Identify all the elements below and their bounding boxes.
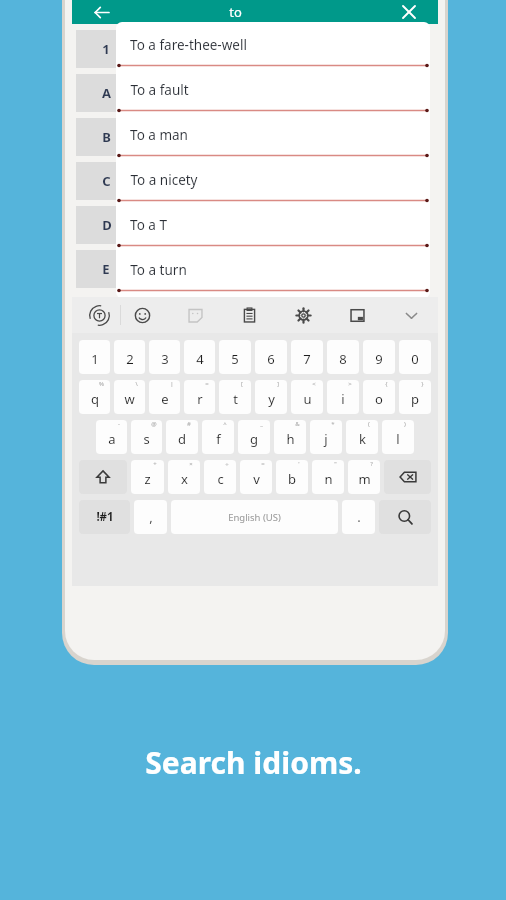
button[interactable]: q: [79, 380, 110, 414]
button[interactable]: v: [240, 460, 272, 494]
button[interactable]: Backspace: [384, 460, 431, 494]
button[interactable]: Emoji: [129, 302, 155, 328]
button[interactable]: Translate: [86, 302, 112, 328]
button[interactable]: Clear: [398, 1, 420, 23]
button[interactable]: Stickers: [182, 302, 208, 328]
staticText: r: [197, 390, 203, 408]
button[interactable]: Clipboard: [236, 302, 262, 328]
staticText: t: [233, 390, 238, 408]
button[interactable]: m: [348, 460, 380, 494]
staticText: +: [153, 460, 157, 468]
button[interactable]: .: [342, 500, 375, 534]
staticText: z: [144, 470, 151, 488]
staticText: x: [181, 470, 188, 488]
button[interactable]: 8: [327, 340, 359, 374]
button[interactable]: To a turn: [116, 247, 430, 292]
staticText: 2: [126, 350, 134, 368]
staticText: B: [102, 128, 111, 146]
staticText: To a nicety: [130, 171, 198, 189]
button[interactable]: English (US): [171, 500, 338, 534]
button[interactable]: Floating keyboard: [344, 302, 370, 328]
staticText: To a man: [130, 126, 188, 144]
button[interactable]: n: [312, 460, 344, 494]
button[interactable]: 5: [219, 340, 251, 374]
button[interactable]: E: [76, 250, 424, 288]
button[interactable]: a: [96, 420, 127, 454]
button[interactable]: l: [382, 420, 414, 454]
staticText: e: [161, 390, 169, 408]
button[interactable]: 2: [114, 340, 145, 374]
button[interactable]: u: [291, 380, 323, 414]
staticText: f: [216, 430, 221, 448]
staticText: d: [178, 430, 186, 448]
button[interactable]: A: [76, 74, 424, 112]
button[interactable]: r: [184, 380, 215, 414]
button[interactable]: To a man: [116, 112, 430, 157]
button[interactable]: p: [399, 380, 431, 414]
button[interactable]: z: [131, 460, 164, 494]
button[interactable]: B: [76, 118, 424, 156]
button[interactable]: 3: [149, 340, 180, 374]
staticText: q: [91, 390, 99, 408]
button[interactable]: To a T: [116, 202, 430, 247]
button[interactable]: 7: [291, 340, 323, 374]
staticText: English (US): [228, 511, 281, 524]
staticText: !#1: [96, 509, 114, 525]
staticText: ×: [189, 460, 193, 468]
staticText: o: [375, 390, 383, 408]
button[interactable]: s: [131, 420, 162, 454]
staticText: s: [143, 430, 150, 448]
button[interactable]: 9: [363, 340, 395, 374]
button[interactable]: To a fare-thee-well: [116, 22, 430, 67]
staticText: ,: [149, 508, 153, 526]
button[interactable]: g: [238, 420, 270, 454]
staticText: =: [261, 460, 265, 468]
staticText: 5: [231, 350, 239, 368]
button[interactable]: 0: [399, 340, 431, 374]
button[interactable]: [379, 500, 431, 534]
button[interactable]: To a fault: [116, 67, 430, 112]
button[interactable]: !#1: [79, 500, 130, 534]
button[interactable]: b: [276, 460, 308, 494]
button[interactable]: k: [346, 420, 378, 454]
button[interactable]: o: [363, 380, 395, 414]
staticText: &: [295, 420, 300, 428]
button[interactable]: y: [255, 380, 287, 414]
button[interactable]: 1: [76, 30, 424, 68]
staticText: To a fare-thee-well: [130, 36, 247, 54]
staticText: 6: [267, 350, 275, 368]
button[interactable]: Back: [90, 1, 112, 23]
staticText: to: [229, 3, 242, 21]
button[interactable]: j: [310, 420, 342, 454]
button[interactable]: 6: [255, 340, 287, 374]
button[interactable]: ,: [134, 500, 167, 534]
staticText: h: [286, 430, 295, 448]
button[interactable]: To a nicety: [116, 157, 430, 202]
button[interactable]: x: [168, 460, 200, 494]
button[interactable]: e: [149, 380, 180, 414]
staticText: <: [312, 380, 316, 388]
staticText: a: [108, 430, 116, 448]
staticText: E: [102, 260, 110, 278]
staticText: -: [118, 420, 120, 428]
button[interactable]: 1: [79, 340, 110, 374]
button[interactable]: More: [398, 302, 424, 328]
staticText: .: [357, 508, 361, 526]
button[interactable]: Settings: [290, 302, 316, 328]
button[interactable]: d: [166, 420, 198, 454]
button[interactable]: h: [274, 420, 306, 454]
button[interactable]: C: [76, 162, 424, 200]
button[interactable]: c: [204, 460, 236, 494]
staticText: ^: [223, 420, 227, 428]
button[interactable]: i: [327, 380, 359, 414]
button[interactable]: w: [114, 380, 145, 414]
staticText: p: [411, 390, 419, 408]
staticText: D: [102, 216, 112, 234]
button[interactable]: f: [202, 420, 234, 454]
button[interactable]: Shift: [79, 460, 127, 494]
button[interactable]: 4: [184, 340, 215, 374]
button[interactable]: D: [76, 206, 424, 244]
button[interactable]: t: [219, 380, 251, 414]
staticText: i: [341, 390, 345, 408]
staticText: 9: [375, 350, 383, 368]
